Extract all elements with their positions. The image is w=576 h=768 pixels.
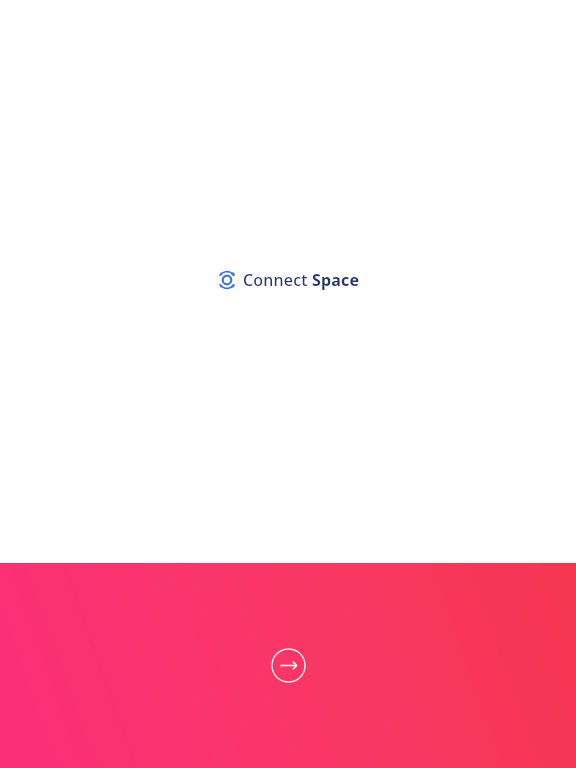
staticText: Connect Space bbox=[243, 269, 360, 291]
button[interactable]: Connect Space logo bbox=[217, 269, 360, 291]
other: Connect Space logo bbox=[217, 270, 237, 290]
button[interactable]: Next bbox=[271, 648, 306, 683]
